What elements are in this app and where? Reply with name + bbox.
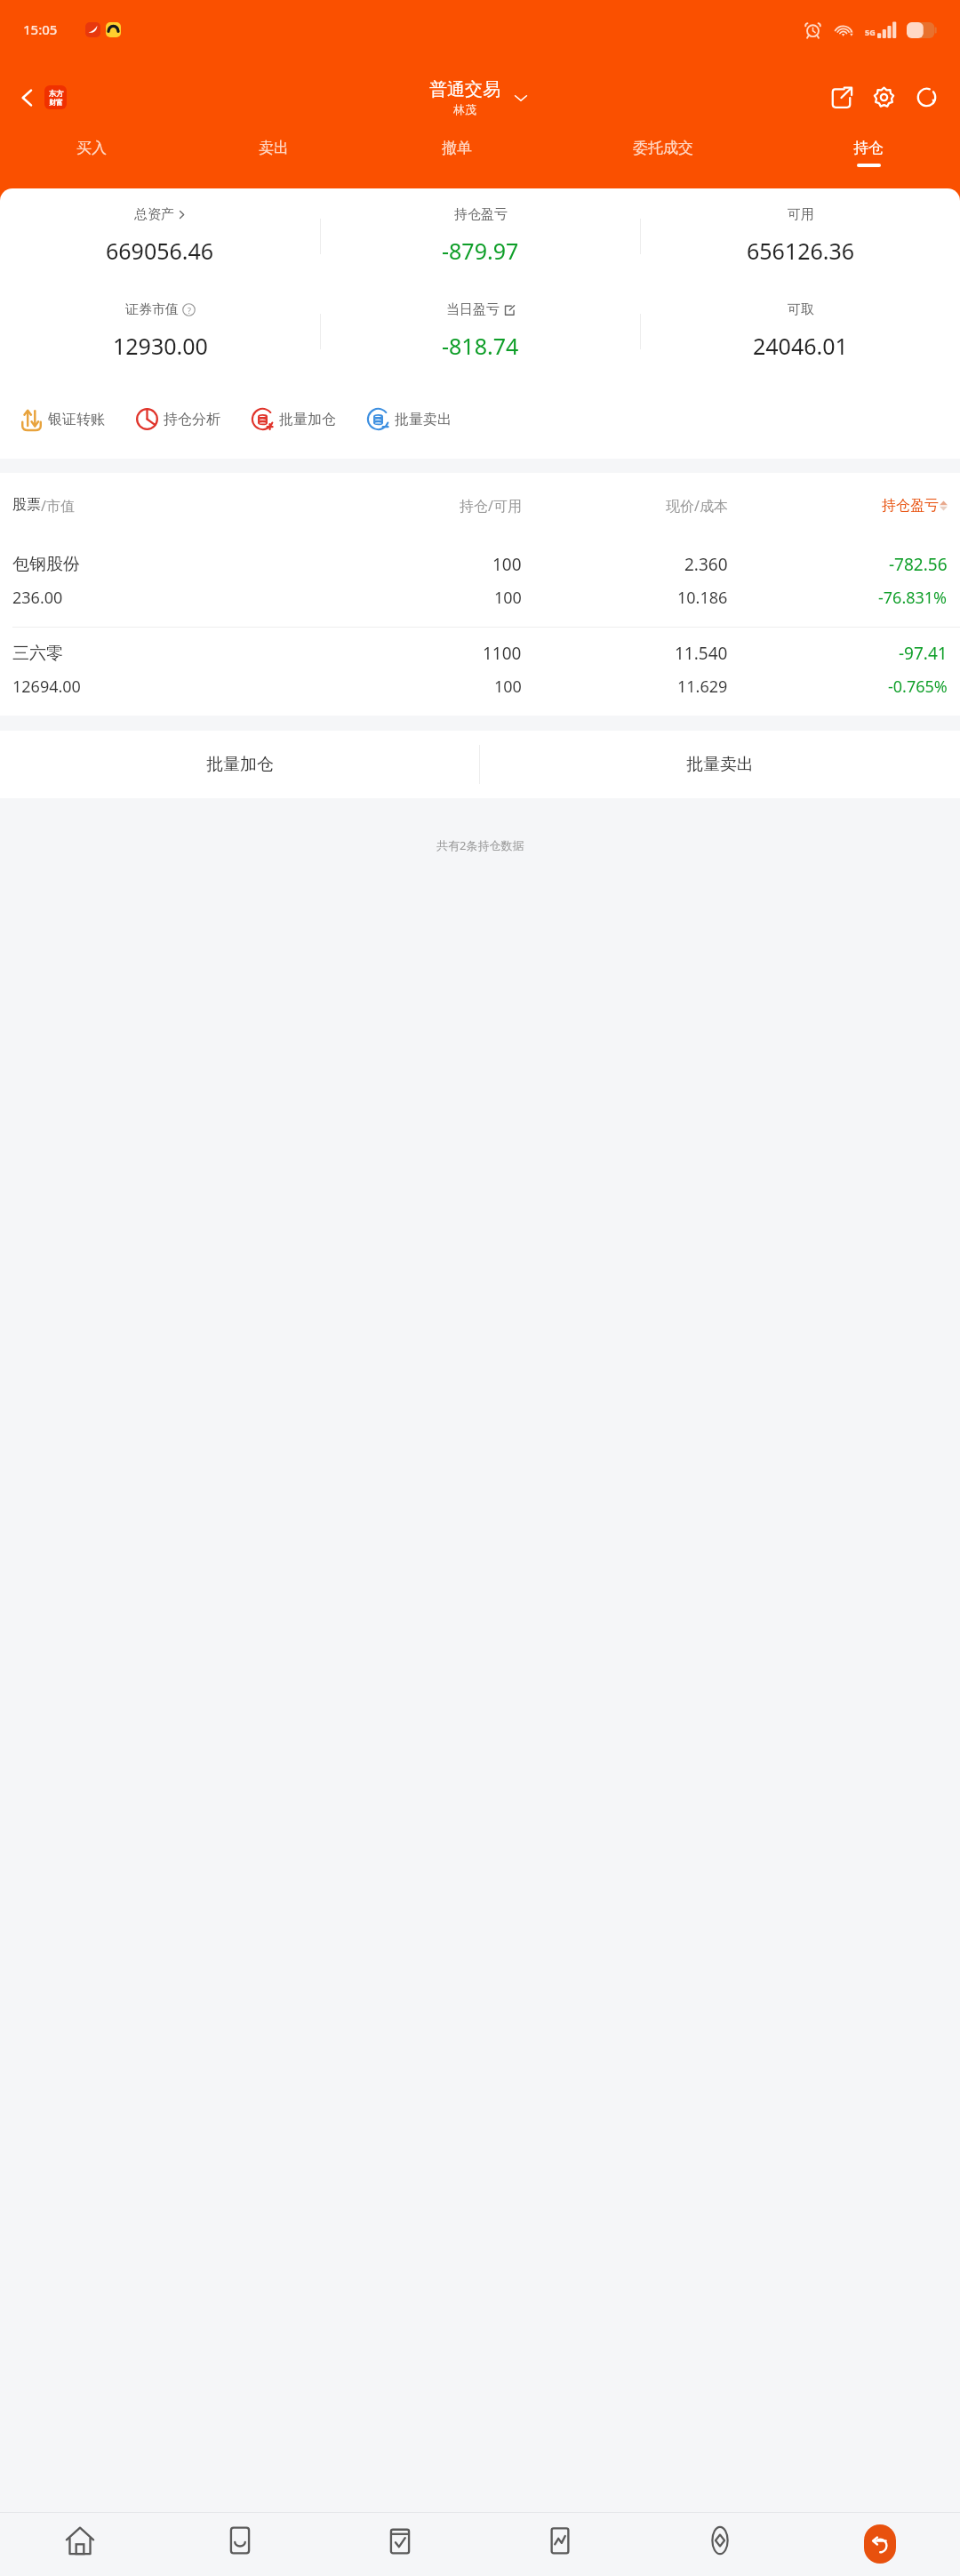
staticText: -97.41 xyxy=(899,642,948,665)
button[interactable]: 设置 xyxy=(864,77,903,116)
button[interactable]: 可用 xyxy=(747,206,855,266)
button[interactable]: 卖出 xyxy=(182,135,365,188)
staticText: 24046.01 xyxy=(753,331,848,361)
staticText: 现价/成本 xyxy=(666,496,728,516)
staticText: -76.831% xyxy=(878,587,948,609)
button[interactable]: 行情 xyxy=(480,2513,640,2576)
staticText: 批量加仓 xyxy=(279,411,336,428)
staticText: 1100 xyxy=(483,642,522,665)
staticText: 卖出 xyxy=(259,139,289,157)
staticText: 批量卖出 xyxy=(686,754,754,775)
staticText: 银证转账 xyxy=(48,411,105,428)
staticText: 5G xyxy=(865,27,876,37)
staticText: 股票 xyxy=(12,496,41,514)
button[interactable]: 持仓盈亏 xyxy=(442,206,519,266)
staticText: 669056.46 xyxy=(106,236,214,266)
staticText: 100 xyxy=(492,553,522,576)
staticText: 12694.00 xyxy=(12,676,81,698)
staticText: 656126.36 xyxy=(747,236,855,266)
staticText: 持仓分析 xyxy=(164,411,220,428)
staticText: 可取 xyxy=(788,301,814,318)
staticText: 12930.00 xyxy=(113,331,208,361)
button[interactable]: 返回 xyxy=(800,2513,960,2576)
button[interactable]: 持仓盈亏 xyxy=(728,497,948,515)
staticText: -782.56 xyxy=(889,553,948,576)
button[interactable]: 买入 xyxy=(0,135,182,188)
button[interactable]: 撤单 xyxy=(365,135,548,188)
button[interactable]: 首页 xyxy=(0,2513,160,2576)
staticText: 持仓盈亏 xyxy=(454,206,508,223)
staticText: 买入 xyxy=(76,139,107,157)
staticText: 委托成交 xyxy=(633,139,693,157)
staticText: 东方 xyxy=(49,89,63,98)
button[interactable]: 现价/成本 xyxy=(522,496,728,516)
staticText: 236.00 xyxy=(12,587,63,609)
staticText: 撤单 xyxy=(442,139,472,157)
staticText: 10.186 xyxy=(677,587,728,609)
staticText: 持仓/可用 xyxy=(460,496,522,516)
button[interactable]: 持仓 xyxy=(777,135,960,188)
staticText: 100 xyxy=(494,676,522,698)
staticText: 普通交易 xyxy=(429,78,500,100)
staticText: 总资产 xyxy=(134,206,174,223)
staticText: 100 xyxy=(494,587,522,609)
button[interactable]: 三六零 xyxy=(0,628,960,716)
staticText: 财富 xyxy=(49,98,63,107)
button[interactable]: 委托成交 xyxy=(548,135,777,188)
staticText: 11.629 xyxy=(677,676,728,698)
button[interactable]: 可取 xyxy=(753,301,848,361)
button[interactable]: 持仓分析 xyxy=(135,407,220,431)
button[interactable]: 批量卖出 xyxy=(480,731,960,798)
button[interactable]: 总资产 xyxy=(106,206,214,266)
button[interactable]: 返回 xyxy=(12,80,72,115)
staticText: -0.765% xyxy=(888,676,948,698)
button[interactable]: 批量加仓 xyxy=(251,407,336,431)
staticText: 三六零 xyxy=(12,643,63,664)
staticText: 2.360 xyxy=(684,553,728,576)
staticText: 批量加仓 xyxy=(206,754,274,775)
button[interactable]: 股票 xyxy=(12,496,316,516)
button[interactable]: 理财 xyxy=(640,2513,800,2576)
button[interactable]: 分享 xyxy=(821,77,860,116)
staticText: ? xyxy=(188,305,191,316)
button[interactable]: 批量加仓 xyxy=(0,731,479,798)
button[interactable]: 持仓/可用 xyxy=(316,496,522,516)
staticText: 持仓盈亏 xyxy=(882,497,939,515)
button[interactable]: 自选 xyxy=(160,2513,320,2576)
staticText: /市值 xyxy=(41,496,75,516)
staticText: 15:05 xyxy=(23,20,58,38)
button[interactable]: 银证转账 xyxy=(20,407,105,431)
staticText: 包钢股份 xyxy=(12,554,80,575)
button[interactable]: 交易 xyxy=(320,2513,480,2576)
button[interactable]: 普通交易 xyxy=(429,78,500,116)
staticText: 林茂 xyxy=(453,102,476,116)
staticText: -818.74 xyxy=(442,331,519,361)
staticText: 批量卖出 xyxy=(395,411,452,428)
button[interactable]: 包钢股份 xyxy=(0,539,960,627)
button[interactable]: 切换账户 xyxy=(511,88,531,108)
button[interactable]: 证券市值 xyxy=(113,301,208,361)
button[interactable]: 批量卖出 xyxy=(366,407,452,431)
staticText: 持仓 xyxy=(853,139,884,157)
button[interactable]: 当日盈亏 xyxy=(442,301,519,361)
button[interactable]: 刷新 xyxy=(907,77,946,116)
staticText: 可用 xyxy=(788,206,814,223)
staticText: 共有2条持仓数据 xyxy=(436,837,524,853)
staticText: 证券市值 xyxy=(125,301,179,318)
staticText: -879.97 xyxy=(442,236,519,266)
staticText: 11.540 xyxy=(675,642,728,665)
staticText: 当日盈亏 xyxy=(446,301,500,318)
